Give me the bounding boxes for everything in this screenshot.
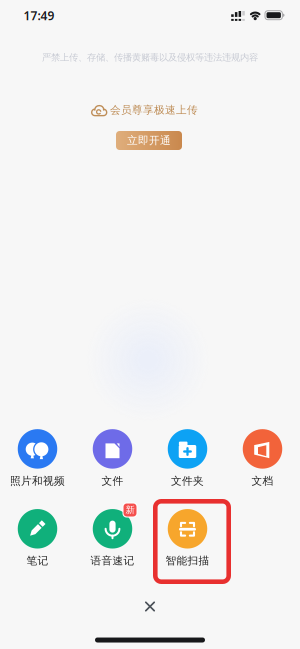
button[interactable]: 文件夹 bbox=[150, 429, 225, 495]
staticText: 文档 bbox=[251, 474, 273, 487]
button[interactable]: 照片和视频 bbox=[0, 429, 75, 495]
staticText: 照片和视频 bbox=[10, 474, 65, 487]
staticText: 智能扫描 bbox=[165, 554, 209, 567]
staticText: 严禁上传、存储、传播黄赌毒以及侵权等违法违规内容 bbox=[42, 52, 258, 63]
staticText: 新 bbox=[125, 504, 134, 516]
staticText: 语音速记 bbox=[90, 554, 134, 567]
button[interactable]: 笔记 bbox=[0, 509, 75, 575]
staticText: 笔记 bbox=[26, 554, 48, 567]
button[interactable]: 立即开通 bbox=[116, 131, 182, 150]
button[interactable]: 语音速记 bbox=[75, 509, 150, 575]
staticText: 立即开通 bbox=[127, 134, 171, 147]
button[interactable]: 文件 bbox=[75, 429, 150, 495]
button[interactable]: 关闭 bbox=[135, 591, 165, 621]
button[interactable]: 智能扫描 bbox=[150, 509, 225, 575]
staticText: 文件夹 bbox=[171, 474, 204, 487]
button[interactable]: 文档 bbox=[225, 429, 300, 495]
staticText: 文件 bbox=[101, 474, 123, 487]
staticText: 会员尊享极速上传 bbox=[110, 103, 198, 116]
staticText: 17:49 bbox=[23, 7, 54, 23]
